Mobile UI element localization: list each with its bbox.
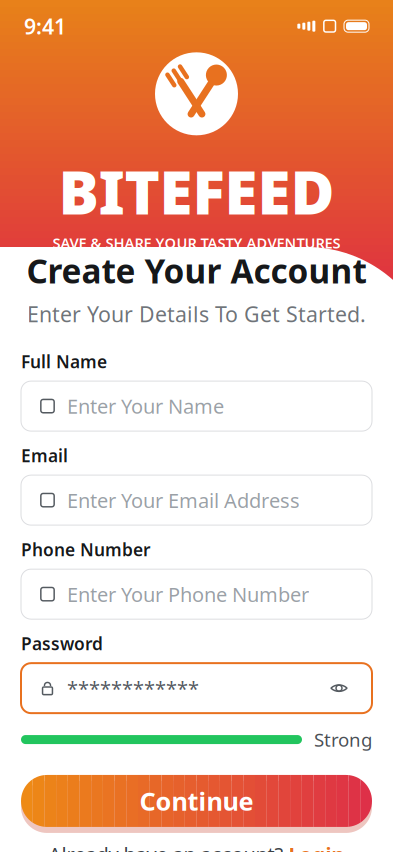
staticText: Enter Your Name — [67, 393, 224, 419]
staticText: Create Your Account — [26, 248, 366, 293]
button[interactable]: Already have an account? — [0, 831, 393, 852]
staticText: BITEFEED — [58, 151, 334, 231]
button[interactable]: Enter Your Phone Number — [21, 569, 372, 619]
staticText: Email — [21, 444, 68, 467]
staticText: Already have an account? — [48, 841, 283, 852]
button[interactable]: Continue — [21, 771, 372, 831]
staticText: Continue — [139, 784, 253, 818]
staticText: Strong — [314, 727, 372, 752]
button[interactable]: Enter Your Email Address — [21, 475, 372, 525]
button[interactable]: Show password — [324, 673, 354, 703]
staticText: Enter Your Phone Number — [67, 581, 309, 607]
staticText: Login — [288, 841, 344, 852]
staticText: 9:41 — [24, 12, 66, 40]
staticText: SAVE & SHARE YOUR TASTY ADVENTURES — [52, 233, 340, 252]
staticText: Enter Your Details To Get Started. — [27, 300, 366, 328]
staticText: Password — [21, 632, 103, 655]
staticText: ************ — [67, 675, 199, 701]
staticText: Full Name — [21, 350, 107, 373]
button[interactable]: Enter Your Name — [21, 381, 372, 431]
staticText: Enter Your Email Address — [67, 487, 300, 513]
staticText: Phone Number — [21, 538, 151, 561]
